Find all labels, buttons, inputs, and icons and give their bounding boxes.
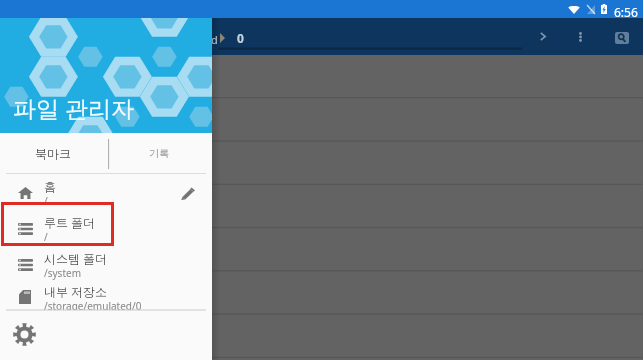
staticText: /storage/emulated/0 [44, 299, 142, 310]
button[interactable]: 기록 [106, 133, 212, 173]
staticText: / [44, 230, 48, 244]
staticText: 루트 폴더 [44, 214, 96, 230]
button[interactable]: 홈 [0, 175, 212, 211]
button[interactable]: Search [615, 32, 629, 44]
staticText: d [211, 32, 218, 47]
button[interactable]: 북마크 [0, 133, 106, 173]
button[interactable]: 루트 폴더 [0, 211, 212, 247]
staticText: 내부 저장소 [44, 283, 108, 299]
button[interactable]: Edit [172, 177, 204, 209]
staticText: 6:56 [614, 4, 638, 20]
staticText: 0 [237, 30, 244, 46]
button[interactable]: 내부 저장소 [0, 283, 212, 310]
staticText: 시스템 폴더 [44, 250, 108, 266]
staticText: 홈 [44, 179, 56, 194]
button[interactable]: Settings [9, 319, 39, 349]
staticText: 기록 [149, 147, 169, 160]
button[interactable]: 시스템 폴더 [0, 247, 212, 283]
staticText: 파일 관리자 [13, 92, 134, 123]
button[interactable]: More options [565, 21, 596, 52]
staticText: /system [44, 266, 81, 280]
staticText: / [44, 194, 48, 208]
staticText: 북마크 [35, 146, 71, 161]
button[interactable]: Forward [527, 21, 558, 52]
